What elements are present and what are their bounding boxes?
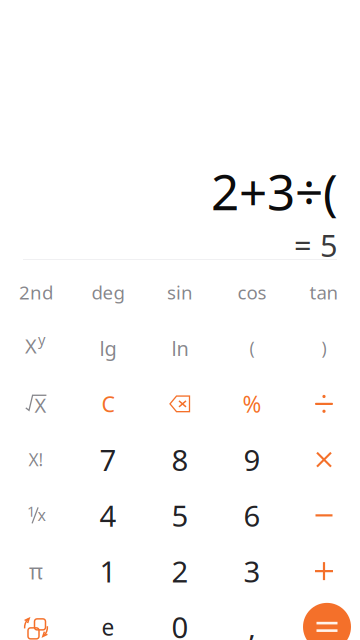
button[interactable]: Delete (144, 376, 216, 432)
button[interactable]: e (72, 599, 144, 640)
staticText: 7 (99, 440, 116, 479)
button[interactable]: 6 (216, 487, 288, 543)
staticText: 5 (171, 496, 188, 535)
staticText: sin (167, 280, 193, 305)
staticText: tan (309, 280, 338, 305)
staticText: lg (99, 335, 116, 361)
staticText: 6 (243, 496, 260, 535)
button[interactable]: sin (144, 264, 216, 320)
staticText: e (101, 612, 114, 640)
staticText: 0 (171, 607, 188, 640)
staticText: cos (237, 280, 266, 305)
staticText: 2+3÷( (211, 158, 338, 224)
button[interactable]: 1 (72, 543, 144, 599)
staticText: 4 (99, 496, 116, 535)
staticText: π (29, 557, 43, 585)
staticText: ) (321, 337, 326, 360)
button[interactable]: 7 (72, 432, 144, 488)
button[interactable]: 5 (144, 487, 216, 543)
button[interactable]: Square root (0, 376, 72, 432)
button[interactable]: Minus (288, 487, 360, 543)
staticText: 9 (243, 440, 260, 479)
staticText: % (242, 389, 261, 419)
button[interactable]: Plus (288, 543, 360, 599)
button[interactable]: 8 (144, 432, 216, 488)
button[interactable]: tan (288, 264, 360, 320)
staticText: C (101, 390, 114, 418)
staticText: X! (28, 448, 43, 471)
staticText: 2nd (19, 280, 53, 305)
button[interactable]: ) (288, 320, 360, 376)
staticText: 3 (243, 552, 260, 591)
button[interactable]: lg (72, 320, 144, 376)
button[interactable]: Unit converter (0, 599, 72, 640)
button[interactable]: Clear (72, 376, 144, 432)
button[interactable]: 0 (144, 599, 216, 640)
button[interactable]: ln (144, 320, 216, 376)
button[interactable]: Factorial (0, 432, 72, 488)
button[interactable]: deg (72, 264, 144, 320)
button[interactable]: cos (216, 264, 288, 320)
staticText: = 5 (294, 225, 338, 265)
staticText: y (38, 330, 45, 349)
button[interactable]: 3 (216, 543, 288, 599)
staticText: X (34, 392, 46, 418)
staticText: 8 (171, 440, 188, 479)
button[interactable]: Divide (288, 376, 360, 432)
staticText: ( (249, 337, 254, 360)
staticText: 1 (27, 501, 35, 521)
button[interactable]: x to the power of y (0, 320, 72, 376)
button[interactable]: Equals (288, 599, 360, 640)
button[interactable]: Multiply (288, 432, 360, 488)
button[interactable]: Pi (0, 543, 72, 599)
button[interactable]: 9 (216, 432, 288, 488)
button[interactable]: Percent (216, 376, 288, 432)
staticText: deg (91, 280, 124, 305)
button[interactable]: 2 (144, 543, 216, 599)
button[interactable]: ( (216, 320, 288, 376)
staticText: 2 (171, 552, 188, 591)
button[interactable]: One over x (0, 487, 72, 543)
staticText: X (25, 333, 37, 359)
button[interactable]: 2nd (0, 264, 72, 320)
staticText: , (248, 607, 256, 640)
staticText: 1 (99, 552, 116, 591)
staticText: x (37, 504, 45, 525)
button[interactable]: Decimal point (216, 599, 288, 640)
button[interactable]: 4 (72, 487, 144, 543)
staticText: ln (171, 335, 188, 361)
